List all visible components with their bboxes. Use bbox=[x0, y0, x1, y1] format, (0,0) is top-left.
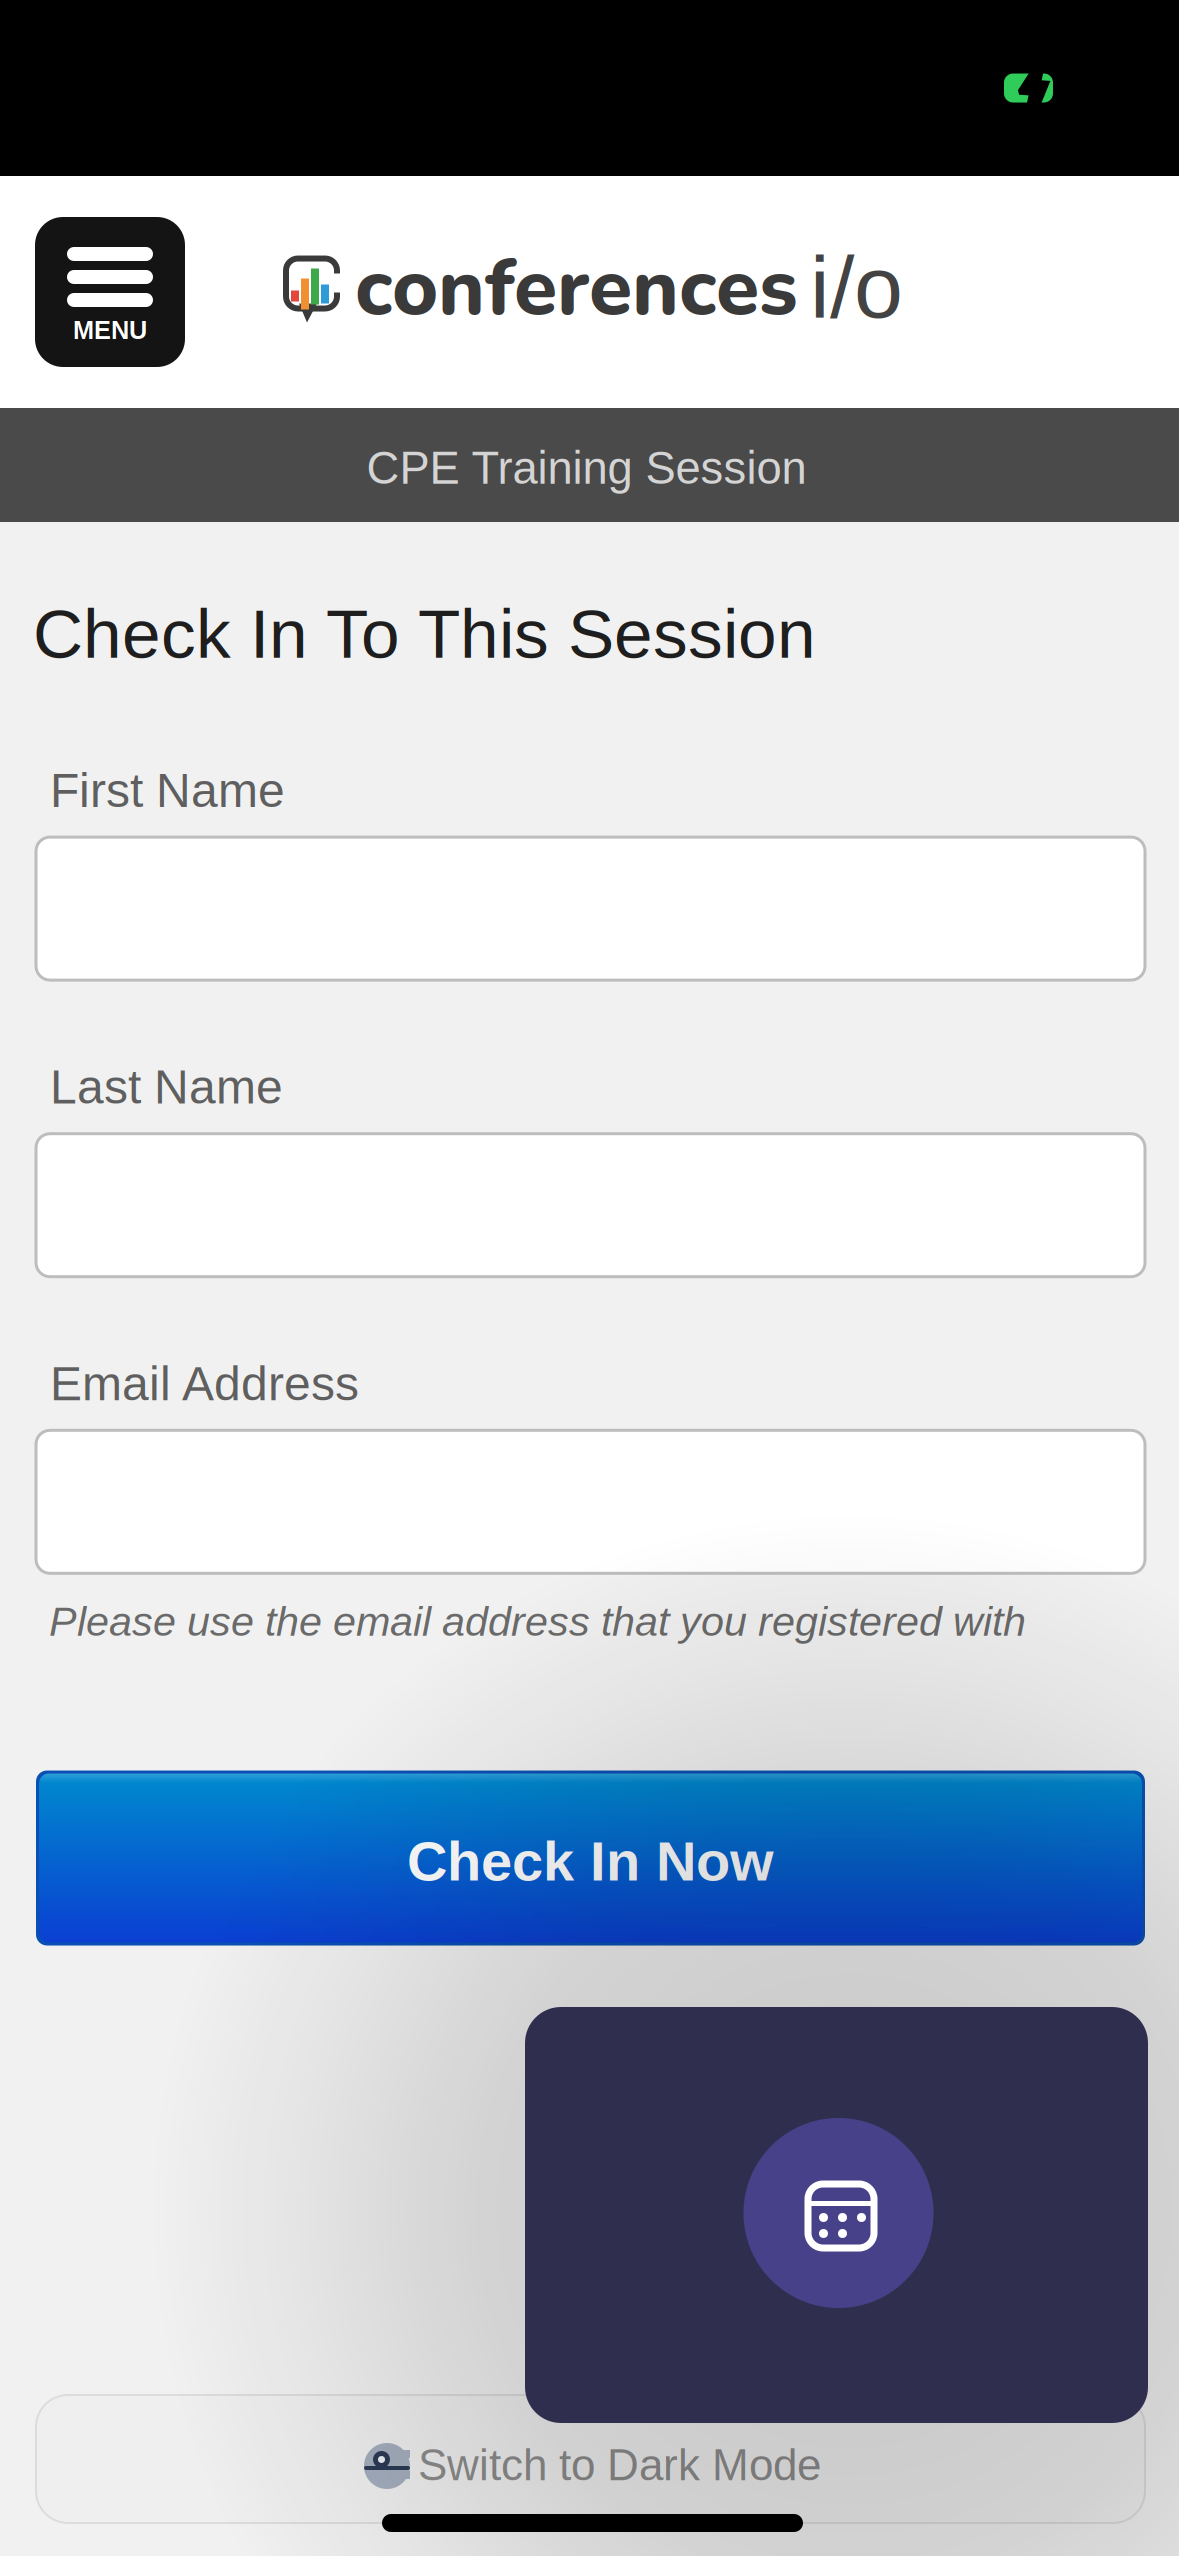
staticText: CPE Training Session bbox=[366, 443, 806, 493]
staticText: MENU bbox=[73, 316, 147, 344]
staticText: First Name bbox=[50, 763, 285, 817]
staticText: Check In To This Session bbox=[33, 595, 816, 672]
staticText: Please use the email address that you re… bbox=[49, 1598, 1026, 1644]
staticText: Last Name bbox=[50, 1060, 283, 1114]
button[interactable]: Check In Now bbox=[36, 1770, 1145, 1945]
button[interactable]: Switch to Dark Mode bbox=[36, 2395, 1145, 2523]
staticText: i/o bbox=[810, 238, 903, 336]
staticText: Email Address bbox=[50, 1357, 359, 1410]
staticText: Check In Now bbox=[407, 1830, 774, 1892]
staticText: Switch to Dark Mode bbox=[418, 2440, 821, 2490]
button[interactable]: Menu bbox=[35, 217, 185, 367]
staticText: conferences bbox=[355, 234, 798, 342]
